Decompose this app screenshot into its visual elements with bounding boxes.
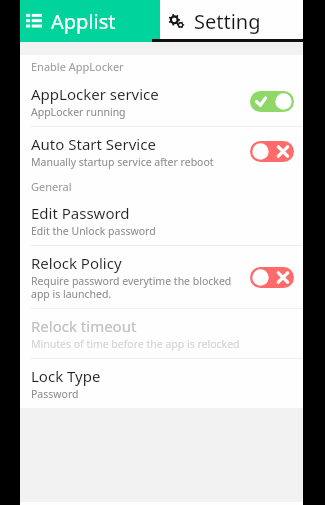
- staticText: Relock timeout: [31, 316, 137, 336]
- staticText: Minutes of time before the app is relock…: [31, 337, 240, 351]
- button[interactable]: Toggle off: [250, 267, 294, 288]
- button[interactable]: Lock Type: [20, 359, 303, 408]
- staticText: Relock Policy: [31, 253, 122, 273]
- staticText: AppLocker running: [31, 105, 126, 119]
- button[interactable]: Relock timeout: [20, 309, 303, 358]
- button[interactable]: Auto Start Service: [20, 127, 303, 176]
- staticText: Applist: [51, 8, 116, 35]
- button[interactable]: AppLocker service: [20, 77, 303, 126]
- staticText: Enable AppLocker: [31, 59, 124, 74]
- button[interactable]: Applist: [20, 0, 160, 42]
- button[interactable]: Toggle on: [250, 91, 294, 112]
- staticText: Manually startup service after reboot: [31, 155, 214, 169]
- staticText: Require password everytime the blocked a…: [31, 274, 232, 301]
- staticText: Lock Type: [31, 366, 101, 386]
- button[interactable]: Edit Password: [20, 196, 303, 245]
- staticText: General: [31, 179, 72, 194]
- button[interactable]: Toggle off: [250, 141, 294, 162]
- staticText: AppLocker service: [31, 84, 159, 104]
- button[interactable]: Setting: [160, 0, 303, 42]
- staticText: Edit the Unlock password: [31, 224, 156, 238]
- button[interactable]: Relock Policy: [20, 246, 303, 308]
- staticText: Setting: [194, 8, 261, 35]
- staticText: Edit Password: [31, 203, 130, 223]
- staticText: Password: [31, 387, 79, 401]
- staticText: Auto Start Service: [31, 134, 156, 154]
